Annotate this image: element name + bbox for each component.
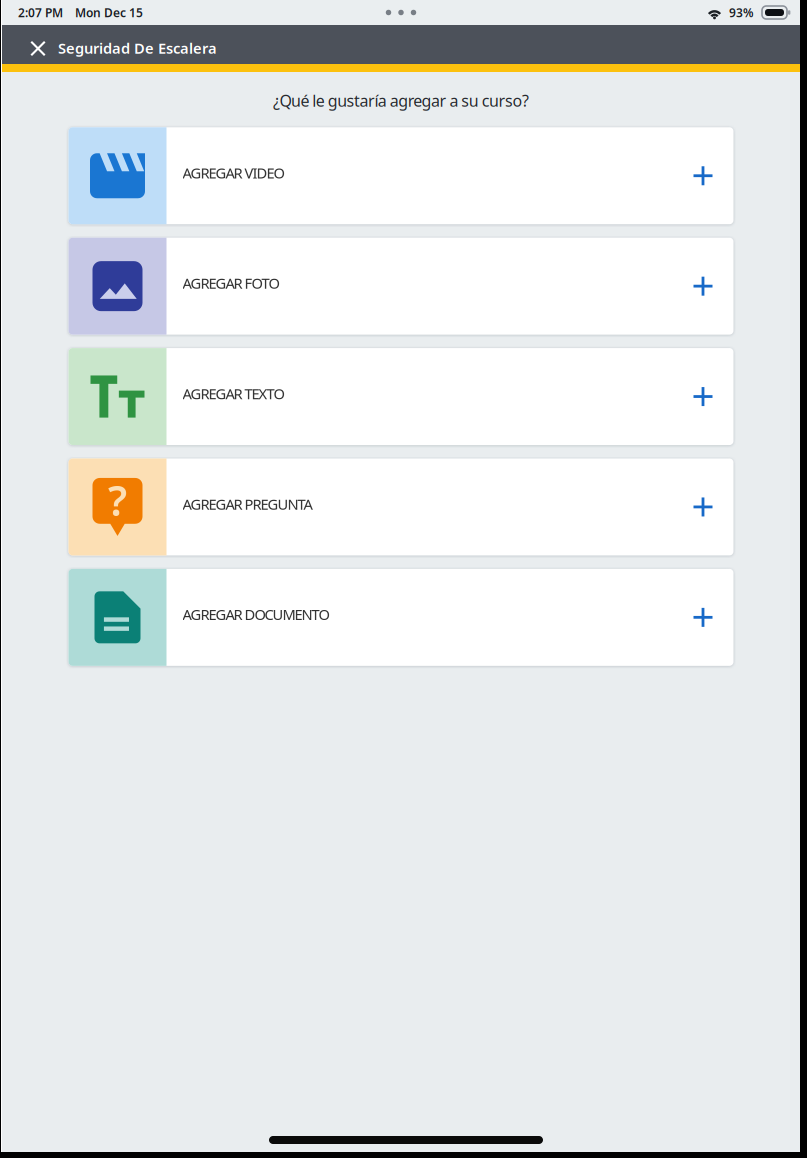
staticText: AGREGAR VIDEO	[182, 163, 284, 182]
staticText: AGREGAR TEXTO	[182, 384, 284, 403]
staticText: AGREGAR DOCUMENTO	[182, 605, 329, 624]
button[interactable]: AGREGAR VIDEO	[68, 127, 733, 224]
button[interactable]: AGREGAR DOCUMENTO	[68, 569, 733, 666]
staticText: Seguridad De Escalera	[58, 38, 217, 58]
staticText: AGREGAR PREGUNTA	[182, 494, 312, 514]
staticText: 93%	[729, 4, 754, 20]
button[interactable]: AGREGAR FOTO	[68, 238, 733, 335]
button[interactable]: ?	[68, 458, 733, 555]
button[interactable]: Close	[18, 25, 58, 64]
staticText: 2:07 PM	[18, 4, 63, 20]
staticText: AGREGAR FOTO	[182, 273, 279, 293]
button[interactable]: AGREGAR TEXTO	[68, 348, 733, 445]
staticText: ?	[108, 472, 127, 527]
staticText: Mon Dec 15	[75, 4, 143, 20]
staticText: ¿Qué le gustaría agregar a su curso?	[273, 90, 529, 111]
